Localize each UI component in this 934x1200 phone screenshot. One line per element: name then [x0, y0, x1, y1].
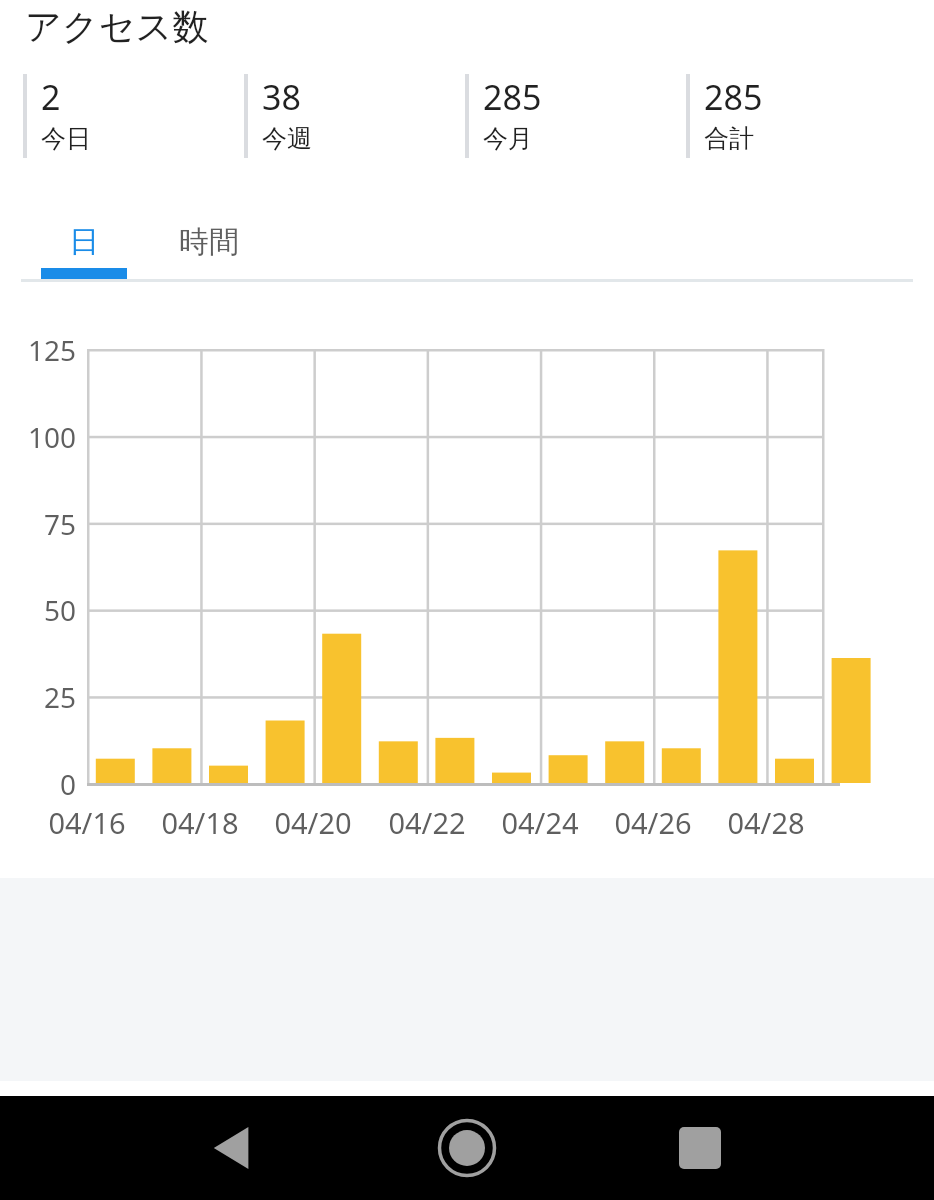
- staticText: 100: [0, 418, 76, 456]
- staticText: アクセス数: [25, 4, 209, 49]
- button[interactable]: Home: [417, 1096, 517, 1200]
- button[interactable]: 2: [23, 74, 223, 158]
- staticText: 今週: [262, 123, 312, 154]
- staticText: 04/26: [593, 803, 713, 842]
- button[interactable]: 285: [686, 74, 886, 158]
- staticText: 04/22: [367, 803, 487, 842]
- button[interactable]: 285: [465, 74, 665, 158]
- button[interactable]: 時間: [146, 206, 271, 278]
- staticText: 50: [0, 591, 76, 629]
- button[interactable]: Back: [183, 1096, 283, 1200]
- staticText: 285: [704, 74, 763, 120]
- staticText: 04/20: [253, 803, 373, 842]
- staticText: 今日: [41, 123, 91, 154]
- button[interactable]: 38: [244, 74, 444, 158]
- staticText: 75: [0, 505, 76, 543]
- staticText: 時間: [179, 223, 239, 261]
- staticText: 2: [41, 74, 61, 120]
- staticText: 今月: [483, 123, 533, 154]
- staticText: 04/18: [140, 803, 260, 842]
- button[interactable]: 日: [21, 206, 146, 278]
- staticText: 合計: [704, 123, 754, 154]
- staticText: 04/24: [480, 803, 600, 842]
- staticText: 04/16: [27, 803, 147, 842]
- staticText: 25: [0, 678, 76, 716]
- staticText: 38: [262, 74, 301, 120]
- staticText: 0: [0, 765, 76, 803]
- staticText: 285: [483, 74, 542, 120]
- button[interactable]: Recent apps: [650, 1096, 750, 1200]
- staticText: 日: [69, 223, 99, 261]
- staticText: 04/28: [706, 803, 826, 842]
- staticText: 125: [0, 331, 76, 369]
